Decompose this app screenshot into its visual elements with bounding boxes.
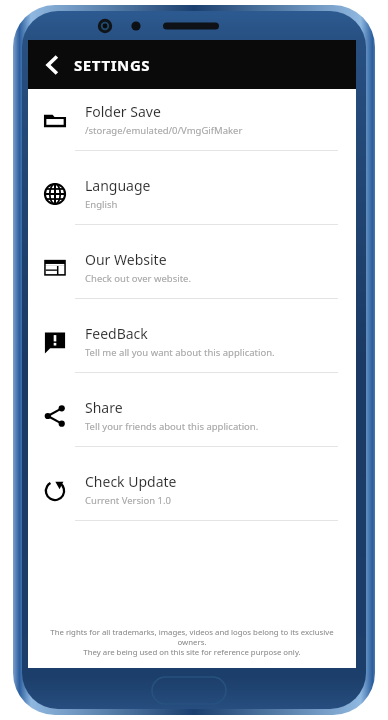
staticText: Our Website (85, 250, 167, 269)
staticText: /storage/emulated/0/VmgGifMaker (85, 124, 243, 137)
staticText: Tell your friends about this application… (85, 420, 259, 433)
staticText: Language (85, 176, 151, 195)
staticText: FeedBack (85, 324, 148, 343)
staticText: Tell me all you want about this applicat… (85, 346, 275, 359)
button[interactable]: Check Update (28, 459, 356, 533)
staticText: The rights for all trademarks, images, v… (36, 627, 348, 647)
staticText: Check Update (85, 472, 177, 491)
button[interactable]: Language (28, 163, 356, 237)
staticText: Current Version 1.0 (85, 494, 171, 507)
staticText: Folder Save (85, 102, 161, 121)
button[interactable]: Share (28, 385, 356, 459)
staticText: SETTINGS (74, 55, 151, 75)
button[interactable]: Folder Save (28, 89, 356, 163)
staticText: Share (85, 398, 123, 417)
staticText: Check out over website. (85, 272, 191, 285)
staticText: English (85, 198, 118, 211)
button[interactable]: FeedBack (28, 311, 356, 385)
button[interactable]: Back (36, 49, 68, 81)
button[interactable]: Our Website (28, 237, 356, 311)
staticText: They are being used on this site for ref… (83, 647, 301, 658)
